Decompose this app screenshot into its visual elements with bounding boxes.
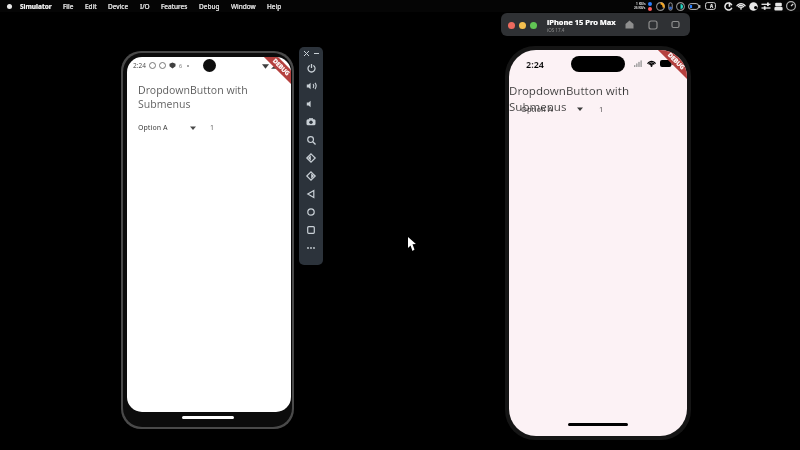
button[interactable]: Back — [299, 185, 323, 203]
button[interactable]: Option A — [521, 104, 604, 114]
staticText: Option A — [521, 104, 553, 114]
staticText: A — [710, 3, 714, 9]
staticText: 26 KB/s — [634, 6, 646, 10]
staticText: Debug — [199, 2, 220, 11]
staticText: 1 KB/s — [636, 2, 646, 6]
staticText: 6 — [179, 62, 183, 69]
button[interactable]: Volume up — [299, 77, 323, 95]
staticText: DEBUG — [271, 57, 291, 78]
staticText: 2:24 — [526, 58, 544, 70]
button[interactable]: Rotate left — [299, 149, 323, 167]
button[interactable]: Screenshot — [299, 113, 323, 131]
staticText: Features — [161, 2, 188, 11]
button[interactable]: Volume down — [299, 95, 323, 113]
staticText: 1 — [599, 104, 604, 114]
staticText: 1 — [210, 123, 215, 133]
button[interactable]: Minimize — [312, 49, 320, 57]
staticText: Device — [108, 2, 129, 11]
button[interactable]: Maximize window — [530, 22, 537, 29]
button[interactable]: Option A — [138, 123, 215, 133]
staticText: iPhone 15 Pro Max — [547, 17, 616, 27]
button[interactable]: Close — [302, 49, 310, 57]
staticText: 2:24 — [133, 61, 146, 70]
staticText: iOS 17.4 — [547, 27, 565, 33]
staticText: Help — [267, 2, 282, 11]
staticText: Simulator — [20, 2, 52, 11]
button[interactable]: Rotate — [646, 18, 659, 31]
staticText: Window — [231, 2, 256, 11]
staticText: DropdownButton with Submenus — [509, 83, 687, 115]
staticText: DropdownButton with Submenus — [138, 83, 291, 111]
staticText: DEBUG — [666, 51, 687, 72]
button[interactable]: Home — [299, 203, 323, 221]
button[interactable]: Zoom — [299, 131, 323, 149]
button[interactable]: Power — [299, 59, 323, 77]
staticText: File — [63, 2, 74, 11]
button[interactable]: More — [299, 239, 323, 257]
button[interactable]: Home — [623, 18, 636, 31]
button[interactable]: Rotate right — [299, 167, 323, 185]
staticText: Option A — [138, 123, 168, 133]
button[interactable]: Minimize window — [519, 22, 526, 29]
staticText: Edit — [85, 2, 97, 11]
button[interactable]: Close window — [508, 22, 515, 29]
staticText: I/O — [140, 2, 150, 11]
button[interactable]: Screenshot — [669, 18, 682, 31]
button[interactable]: Overview — [299, 221, 323, 239]
